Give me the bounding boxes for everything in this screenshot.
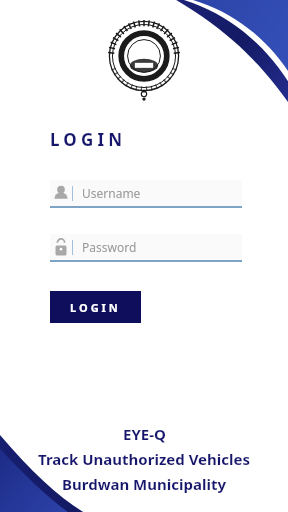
staticText: Track Unauthorized Vehicles [38, 449, 250, 469]
staticText: Burdwan Municipality [62, 474, 226, 494]
button[interactable]: LOGIN [50, 291, 141, 323]
staticText: LOGIN [70, 300, 121, 315]
staticText: Username [82, 185, 141, 201]
staticText: EYE-Q [123, 424, 166, 444]
staticText: Password [82, 239, 137, 255]
button[interactable]: Username [50, 180, 242, 208]
button[interactable]: Password [50, 234, 242, 262]
staticText: LOGIN [50, 128, 127, 151]
